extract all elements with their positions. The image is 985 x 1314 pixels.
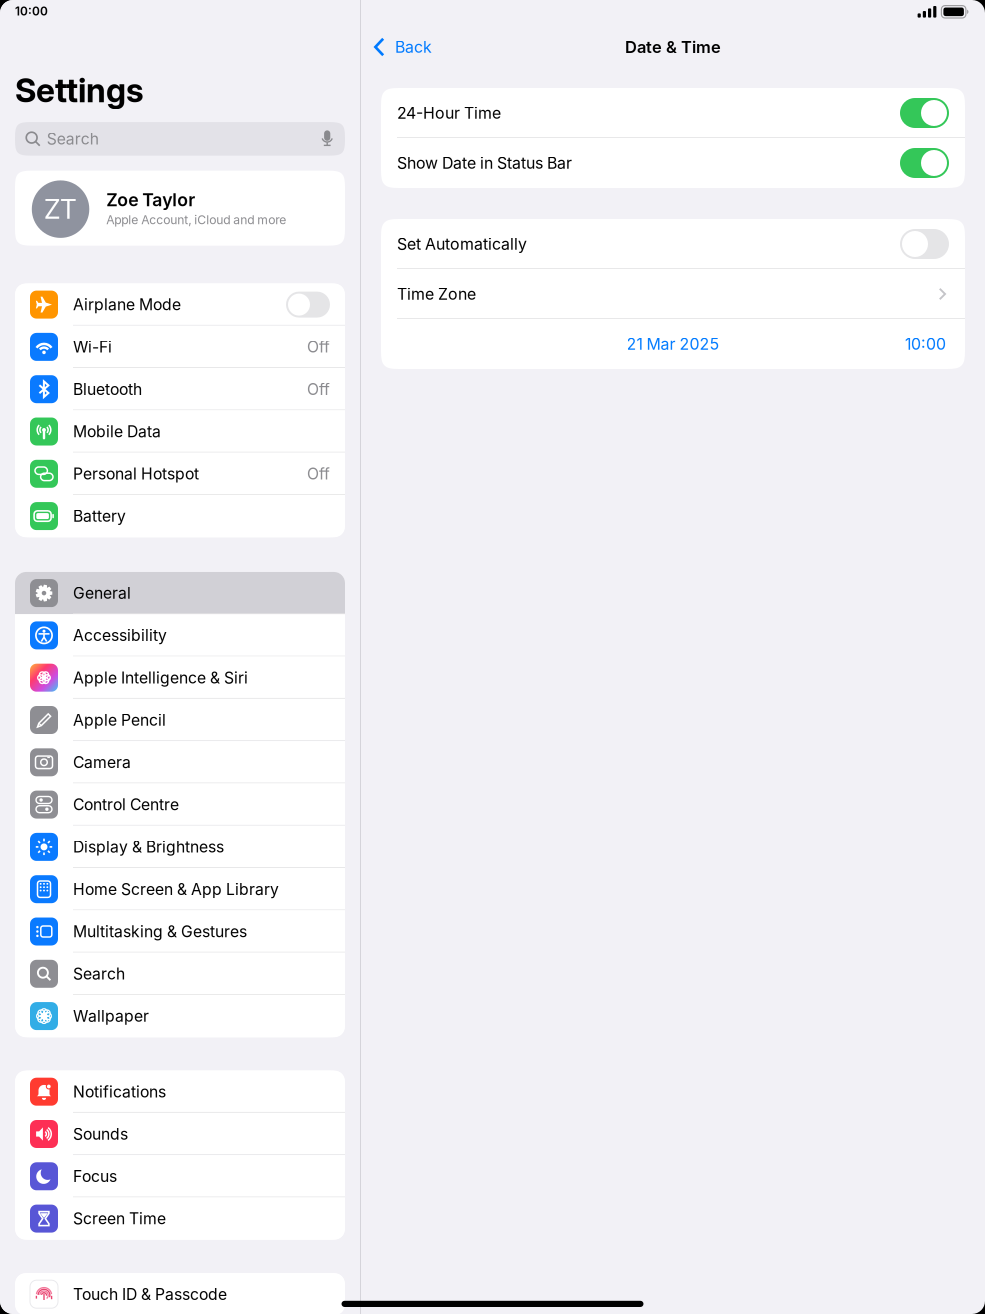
staticText: Mobile Data [73, 422, 161, 441]
staticText: Camera [73, 753, 131, 772]
button[interactable]: Multitasking & Gestures [15, 910, 345, 953]
button[interactable]: Search [15, 122, 345, 156]
staticText: Time Zone [397, 284, 476, 304]
button[interactable]: 21 Mar 2025 [381, 319, 965, 369]
button[interactable]: Personal Hotspot [15, 453, 345, 495]
staticText: 10:00 [15, 4, 48, 18]
staticText: Sounds [73, 1124, 128, 1143]
staticText: Settings [15, 70, 144, 110]
staticText: Focus [73, 1167, 117, 1186]
staticText: General [73, 584, 131, 603]
staticText: Search [47, 129, 99, 148]
button[interactable]: Control Centre [15, 783, 345, 826]
staticText: Bluetooth [73, 380, 142, 399]
button[interactable]: Search [15, 953, 345, 995]
staticText: Back [395, 37, 432, 57]
button[interactable]: Time Zone [381, 269, 965, 319]
button[interactable]: Bluetooth [15, 368, 345, 410]
button[interactable]: Back [361, 25, 440, 69]
button[interactable]: General [15, 572, 345, 614]
staticText: ZT [44, 193, 77, 225]
button[interactable]: 24-Hour Time [381, 88, 965, 138]
staticText: 21 Mar 2025 [626, 334, 719, 354]
button[interactable]: Touch ID & Passcode [15, 1273, 345, 1314]
staticText: Display & Brightness [73, 837, 224, 856]
staticText: Off [307, 464, 330, 483]
staticText: Zoe Taylor [106, 189, 195, 210]
button[interactable]: Screen Time [15, 1197, 345, 1240]
staticText: 10:00 [905, 334, 946, 354]
staticText: Notifications [73, 1082, 166, 1101]
button[interactable]: Focus [15, 1155, 345, 1197]
button[interactable]: Sounds [15, 1113, 345, 1155]
staticText: Set Automatically [397, 234, 527, 254]
button[interactable]: Set Automatically [381, 219, 965, 269]
staticText: 24-Hour Time [397, 103, 501, 123]
staticText: Accessibility [73, 626, 167, 645]
button[interactable]: Camera [15, 741, 345, 783]
staticText: Date & Time [625, 37, 721, 57]
button[interactable]: Mobile Data [15, 410, 345, 453]
button[interactable]: Wallpaper [15, 995, 345, 1037]
staticText: Battery [73, 507, 126, 526]
staticText: Screen Time [73, 1209, 166, 1228]
staticText: Touch ID & Passcode [73, 1285, 227, 1304]
staticText: Off [307, 380, 330, 399]
button[interactable]: Apple Intelligence & Siri [15, 656, 345, 699]
button[interactable]: Notifications [15, 1070, 345, 1113]
staticText: Apple Account, iCloud and more [106, 212, 286, 227]
staticText: Apple Pencil [73, 710, 166, 729]
button[interactable]: ZT [15, 171, 345, 246]
staticText: Wi-Fi [73, 337, 112, 356]
staticText: Search [73, 964, 125, 983]
button[interactable]: Airplane Mode [15, 283, 345, 326]
staticText: Wallpaper [73, 1007, 149, 1026]
button[interactable]: Wi-Fi [15, 326, 345, 368]
staticText: Personal Hotspot [73, 464, 199, 483]
staticText: Show Date in Status Bar [397, 153, 572, 173]
staticText: Home Screen & App Library [73, 880, 279, 899]
staticText: Off [307, 337, 330, 356]
button[interactable]: Accessibility [15, 614, 345, 656]
staticText: Control Centre [73, 795, 179, 814]
button[interactable]: Show Date in Status Bar [381, 138, 965, 188]
button[interactable]: Display & Brightness [15, 826, 345, 868]
staticText: Airplane Mode [73, 295, 181, 314]
button[interactable]: Apple Pencil [15, 699, 345, 741]
staticText: Apple Intelligence & Siri [73, 668, 248, 687]
button[interactable]: Home Screen & App Library [15, 868, 345, 910]
button[interactable]: Battery [15, 495, 345, 537]
staticText: Multitasking & Gestures [73, 922, 247, 941]
